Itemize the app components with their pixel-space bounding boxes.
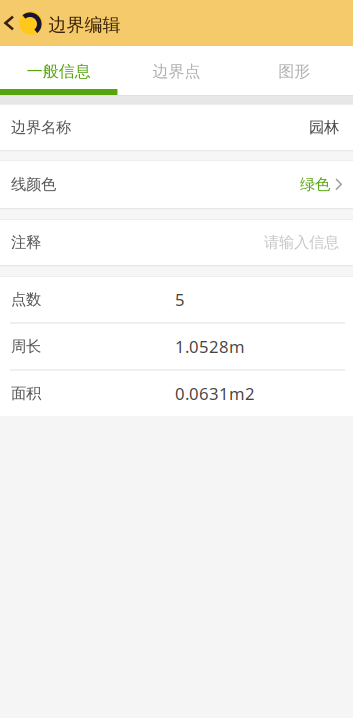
staticText: 线颜色 — [11, 175, 56, 194]
button[interactable]: 边界名称 — [0, 105, 353, 150]
button[interactable]: Back — [0, 0, 42, 46]
staticText: 面积 — [11, 384, 41, 403]
staticText: 边界编辑 — [48, 14, 120, 36]
button[interactable]: 一般信息 — [0, 46, 118, 89]
staticText: 注释 — [11, 233, 41, 252]
staticText: 0.0631m2 — [175, 382, 255, 405]
staticText: 5 — [175, 288, 185, 311]
button[interactable]: 图形 — [235, 46, 353, 89]
button[interactable]: 边界点 — [118, 46, 235, 89]
staticText: 边界点 — [152, 61, 200, 82]
staticText: 图形 — [278, 61, 310, 82]
staticText: 园林 — [309, 118, 339, 137]
staticText: 请输入信息 — [264, 233, 339, 252]
staticText: 点数 — [11, 290, 41, 309]
staticText: 绿色 — [300, 175, 330, 194]
button[interactable]: 线颜色 — [0, 161, 353, 208]
staticText: 1.0528m — [175, 335, 245, 358]
staticText: 一般信息 — [27, 61, 91, 82]
staticText: 周长 — [11, 337, 41, 356]
button[interactable]: 注释 — [0, 220, 353, 265]
staticText: 边界名称 — [11, 118, 71, 137]
